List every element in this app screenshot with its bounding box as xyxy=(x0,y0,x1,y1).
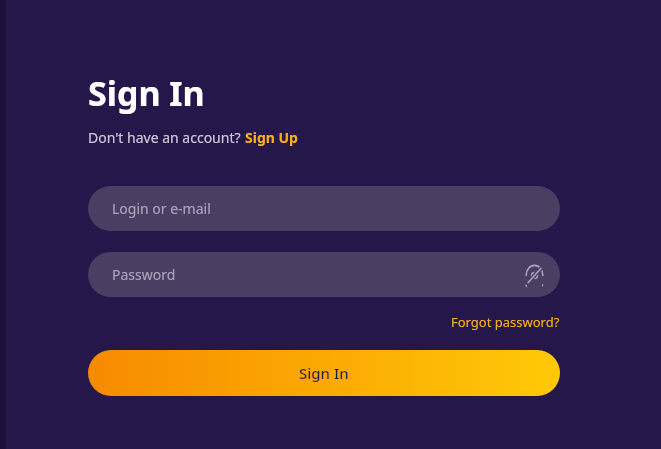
staticText: Don't have an account? xyxy=(88,128,245,147)
staticText: Sign Up xyxy=(245,128,298,147)
staticText: Login or e-mail xyxy=(112,199,211,218)
staticText: Sign In xyxy=(299,363,349,383)
button[interactable]: Password xyxy=(88,252,560,297)
button[interactable]: Login or e-mail xyxy=(88,186,560,231)
button[interactable]: Sign In xyxy=(88,350,560,396)
staticText: Forgot password? xyxy=(451,313,560,331)
button[interactable]: Show password xyxy=(520,261,548,289)
staticText: Password xyxy=(112,265,176,284)
button[interactable]: Sign Up xyxy=(245,128,298,147)
staticText: Sign In xyxy=(88,70,205,116)
button[interactable]: Forgot password? xyxy=(451,313,560,331)
